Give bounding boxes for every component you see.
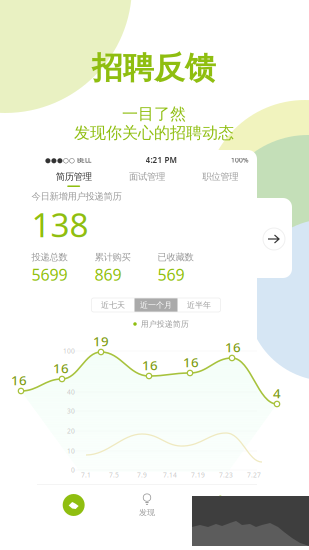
staticText: 投递总数 (31, 251, 67, 263)
staticText: 16 (142, 356, 158, 374)
staticText: 4 (273, 384, 281, 402)
staticText: 已收藏数 (157, 251, 193, 263)
staticText: 10 (67, 447, 75, 455)
button[interactable]: 招聘 (184, 488, 257, 522)
staticText: 16 (183, 353, 199, 371)
staticText: 用户投递简历 (141, 319, 189, 329)
button[interactable]: 发现 (110, 488, 184, 522)
button[interactable]: 面试管理 (110, 168, 184, 190)
button[interactable]: 职位管理 (184, 168, 257, 190)
staticText: 7.9 (137, 471, 147, 479)
staticText: 今日新增用户投递简历 (31, 191, 121, 202)
staticText: 7.5 (109, 471, 119, 479)
staticText: 7.1 (81, 471, 91, 479)
staticText: 发现你关心的招聘动态 (74, 123, 234, 143)
staticText: 7.19 (191, 471, 205, 479)
staticText: 累计购买 (94, 251, 130, 263)
staticText: 7.23 (219, 471, 233, 479)
staticText: 16 (11, 371, 27, 389)
staticText: 100 (63, 347, 75, 355)
staticText: 发现 (139, 508, 155, 517)
staticText: 近一个月 (140, 300, 172, 310)
staticText: 7.27 (247, 471, 261, 479)
staticText: 4:21 PM (145, 155, 176, 165)
staticText: 569 (157, 264, 184, 285)
staticText: 职位管理 (202, 171, 238, 182)
staticText: 近半年 (187, 300, 211, 310)
button[interactable]: 近半年 (177, 298, 220, 312)
button[interactable]: 近一个月 (134, 298, 177, 312)
staticText: 7.14 (163, 471, 177, 479)
staticText: 16 (53, 359, 69, 377)
staticText: 简历管理 (56, 171, 92, 182)
staticText: 19 (93, 332, 109, 350)
staticText: ●●●○○ BELL (45, 156, 91, 164)
staticText: 5699 (31, 264, 67, 285)
button[interactable]: Home (37, 488, 110, 522)
button[interactable]: 简历管理 (37, 168, 110, 190)
staticText: 近七天 (101, 300, 125, 310)
staticText: 30 (67, 407, 75, 415)
staticText: 100% (231, 156, 249, 164)
staticText: 869 (94, 264, 121, 285)
staticText: 招聘反馈 (92, 49, 216, 87)
button[interactable]: 近七天 (91, 298, 134, 312)
staticText: 16 (225, 338, 241, 356)
staticText: 20 (67, 427, 75, 435)
staticText: 面试管理 (129, 171, 165, 182)
staticText: 40 (67, 388, 75, 396)
button[interactable]: More details (260, 225, 288, 253)
staticText: 0 (71, 466, 75, 474)
staticText: 138 (31, 202, 88, 246)
staticText: 一目了然 (122, 104, 186, 124)
